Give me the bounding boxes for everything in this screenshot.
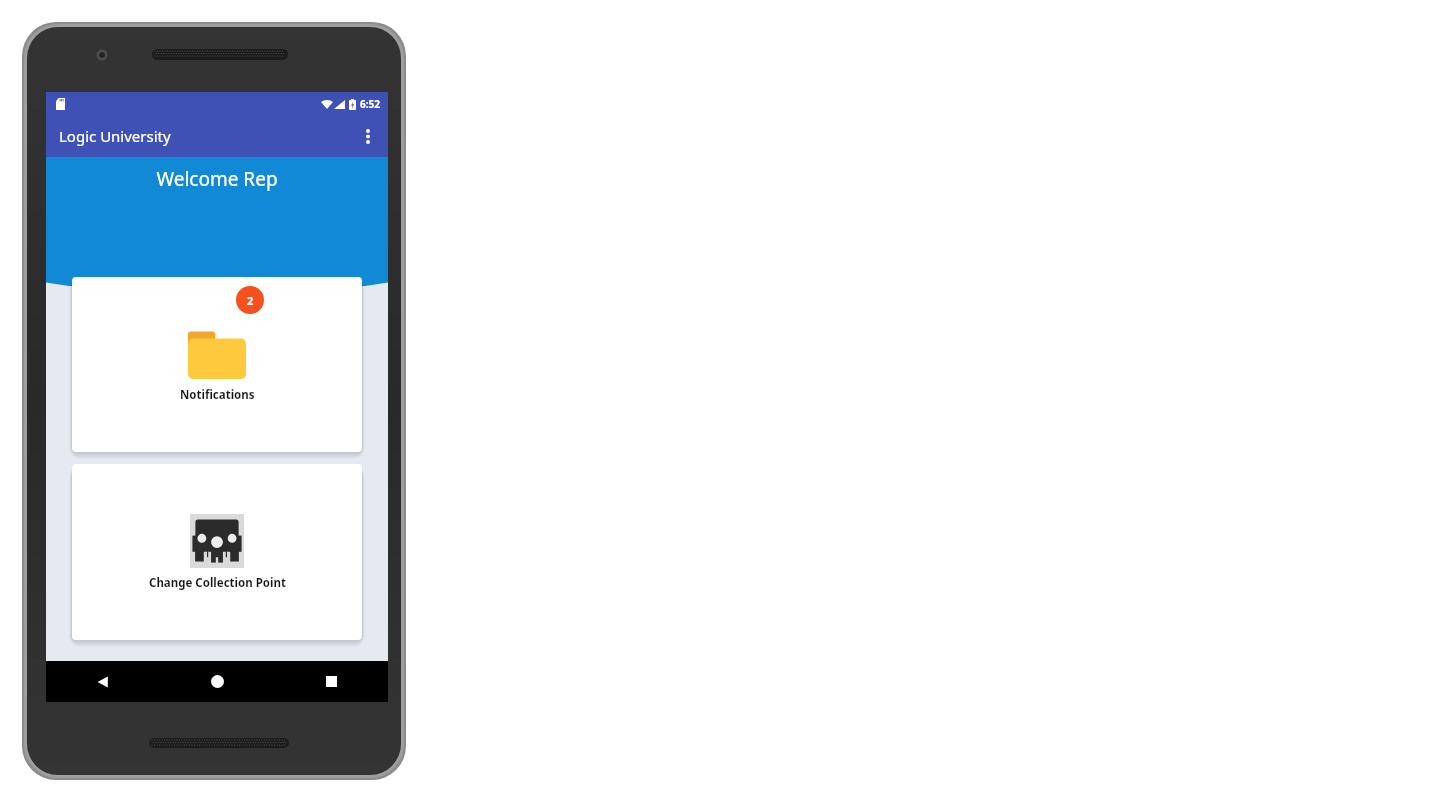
button[interactable]: Notifications bbox=[72, 277, 362, 452]
staticText: Change Collection Point bbox=[149, 575, 286, 591]
staticText: Logic University bbox=[59, 126, 171, 146]
staticText: 2 bbox=[247, 293, 254, 308]
button[interactable]: More options bbox=[348, 116, 388, 156]
button[interactable]: Home bbox=[160, 661, 274, 702]
staticText: Notifications bbox=[180, 387, 255, 403]
staticText: 6:52 bbox=[360, 97, 380, 111]
staticText: Welcome Rep bbox=[46, 166, 388, 192]
button[interactable]: Recent apps bbox=[274, 661, 388, 702]
button[interactable]: Change Collection Point bbox=[72, 464, 362, 640]
button[interactable]: Back bbox=[46, 661, 160, 702]
